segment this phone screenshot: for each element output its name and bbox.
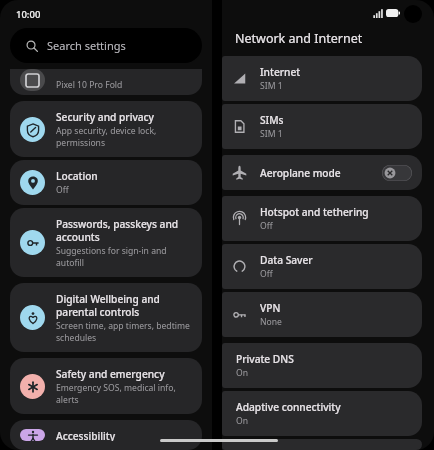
staticText: Emergency SOS, medical info, alerts	[56, 382, 192, 405]
button[interactable]: VPN	[222, 292, 422, 337]
staticText: Location	[56, 169, 98, 183]
button[interactable]: Passwords, passkeys and accounts	[10, 208, 202, 277]
staticText: Accessibility	[56, 429, 116, 441]
staticText: VPN	[260, 301, 281, 315]
button[interactable]: Aeroplane mode	[222, 155, 422, 190]
staticText: Security and privacy	[56, 110, 154, 124]
staticText: Search settings	[47, 38, 126, 53]
staticText: Aeroplane mode	[260, 166, 341, 180]
staticText: Digital Wellbeing and parental controls	[56, 292, 192, 319]
staticText: None	[260, 316, 282, 328]
staticText: Pixel 10 Pro Fold	[56, 79, 123, 91]
button[interactable]: Adaptive connectivity	[222, 391, 422, 436]
button[interactable]: Aeroplane mode toggle	[382, 165, 412, 181]
staticText: Adaptive connectivity	[236, 400, 341, 414]
button[interactable]: Data Saver	[222, 244, 422, 289]
button[interactable]: Hotspot and tethering	[222, 196, 422, 241]
button[interactable]: Security and privacy	[10, 101, 202, 157]
staticText: Suggestions for sign-in and autofill	[56, 245, 192, 268]
staticText: Network and Internet	[235, 30, 363, 47]
staticText: App security, device lock, permissions	[56, 125, 192, 148]
button[interactable]: Mobile network security	[222, 439, 422, 450]
staticText: Passwords, passkeys and accounts	[56, 217, 192, 244]
staticText: Off	[260, 220, 273, 232]
staticText: SIM 1	[260, 128, 283, 140]
button[interactable]: Private DNS	[222, 343, 422, 388]
button[interactable]: Search settings	[10, 28, 202, 63]
staticText: Off	[260, 268, 273, 280]
staticText: On	[236, 415, 249, 427]
button[interactable]: Digital Wellbeing and parental controls	[10, 283, 202, 352]
staticText: SIM 1	[260, 80, 283, 92]
button[interactable]: Accessibility	[10, 420, 202, 450]
staticText: Data Saver	[260, 253, 313, 267]
button[interactable]: Internet	[222, 56, 422, 101]
staticText: Off	[56, 184, 69, 196]
staticText: Hotspot and tethering	[260, 205, 369, 219]
button[interactable]: Location	[10, 160, 202, 205]
staticText: SIMs	[260, 113, 284, 127]
staticText: Internet	[260, 65, 301, 79]
button[interactable]: Pixel 10 Pro Fold	[10, 69, 202, 95]
button[interactable]: Safety and emergency	[10, 358, 202, 414]
button[interactable]: SIMs	[222, 104, 422, 149]
staticText: Private DNS	[236, 352, 294, 366]
staticText: Safety and emergency	[56, 367, 165, 381]
staticText: 10:00	[16, 8, 41, 21]
staticText: Screen time, app timers, bedtime schedul…	[56, 320, 192, 343]
staticText: On	[236, 367, 249, 379]
